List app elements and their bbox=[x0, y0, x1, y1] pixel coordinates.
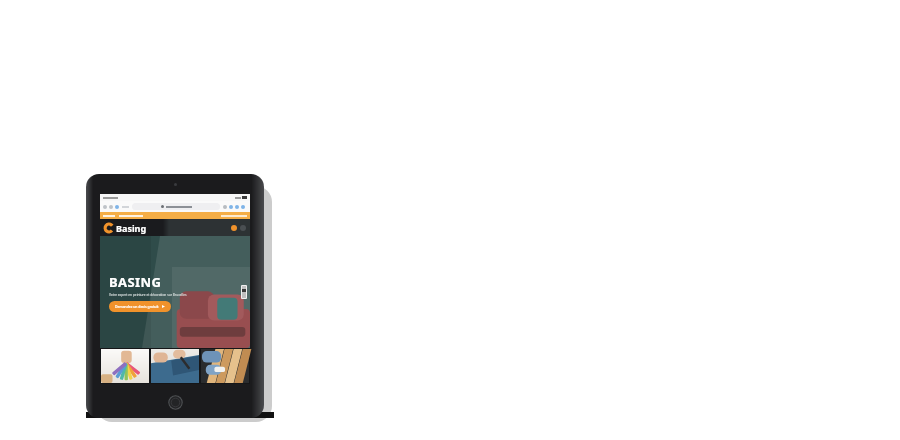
button[interactable]: Navigate bbox=[103, 205, 107, 209]
button[interactable]: Parquet bbox=[201, 349, 249, 383]
button[interactable]: Navigate bbox=[109, 205, 113, 209]
button[interactable]: Browser action bbox=[223, 205, 227, 209]
button[interactable] bbox=[132, 203, 220, 210]
button[interactable]: Browser action bbox=[229, 205, 233, 209]
button[interactable]: Appeler bbox=[231, 225, 237, 231]
staticText: Demandez un devis gratuit bbox=[115, 304, 159, 309]
button[interactable]: Peinture bbox=[101, 349, 149, 383]
staticText: Votre expert en peinture et décoration s… bbox=[109, 293, 187, 297]
button[interactable]: Basing home bbox=[104, 222, 147, 234]
button[interactable]: Tapisserie bbox=[151, 349, 199, 383]
staticText: BASING bbox=[109, 273, 162, 291]
button[interactable]: Reload bbox=[115, 205, 119, 209]
button[interactable]: Browser action bbox=[241, 205, 245, 209]
button[interactable]: Browser action bbox=[235, 205, 239, 209]
button[interactable]: Menu bbox=[240, 225, 246, 231]
staticText: Basing bbox=[116, 222, 147, 234]
button[interactable]: Demandez un devis gratuit bbox=[109, 301, 171, 312]
button[interactable]: Slider bbox=[242, 286, 246, 298]
